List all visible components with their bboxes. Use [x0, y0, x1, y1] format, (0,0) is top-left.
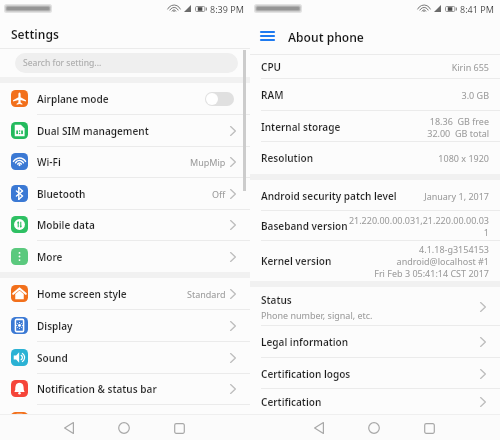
button[interactable]: More	[0, 241, 250, 273]
staticText: Search for setting...	[23, 57, 102, 69]
button[interactable]: Status	[250, 287, 500, 326]
button[interactable]: Wi-Fi	[0, 146, 250, 178]
button[interactable]: Search for setting...	[15, 53, 238, 73]
staticText: 21.220.00.00.031,21.220.00.00.03	[348, 214, 489, 226]
button[interactable]: Home	[360, 414, 388, 440]
staticText: Certification	[261, 395, 322, 409]
staticText: Display	[37, 319, 73, 333]
staticText: Resolution	[261, 151, 314, 165]
staticText: 8:39 PM	[210, 3, 244, 15]
staticText: Legal information	[261, 335, 349, 349]
button[interactable]: Back	[305, 414, 333, 440]
button[interactable]: CPU	[250, 54, 500, 79]
staticText: Baseband version	[261, 219, 348, 233]
button[interactable]: Internal storage	[250, 111, 500, 142]
staticText: Standard	[187, 288, 226, 300]
staticText: Certification logos	[261, 367, 351, 381]
button[interactable]: Mobile data	[0, 209, 250, 241]
staticText: 18.36 GB free	[429, 115, 489, 127]
staticText: Notification & status bar	[37, 382, 157, 396]
staticText: 1	[483, 226, 489, 238]
button[interactable]: Notification & status bar	[0, 373, 250, 405]
button[interactable]: Dual SIM management	[0, 115, 250, 147]
staticText: More	[37, 250, 63, 264]
staticText: Kirin 655	[451, 61, 489, 73]
staticText: 3.0 GB	[461, 89, 489, 101]
staticText: MupMip	[190, 156, 226, 168]
staticText: 8:41 PM	[460, 3, 494, 15]
staticText: Wi-Fi	[37, 155, 61, 169]
button[interactable]: Display	[0, 310, 250, 342]
button[interactable]: Baseband version	[250, 211, 500, 241]
staticText: Android security patch level	[261, 189, 397, 203]
button[interactable]: Airplane mode	[0, 83, 250, 115]
staticText: Dual SIM management	[37, 124, 149, 138]
staticText: Mobile data	[37, 218, 95, 232]
button[interactable]: Recent apps	[415, 414, 443, 440]
staticText: Kernel version	[261, 254, 332, 268]
staticText: Phone number, signal, etc.	[261, 309, 373, 321]
button[interactable]: Certification	[250, 389, 500, 415]
button[interactable]: Recent apps	[165, 414, 193, 440]
staticText: Apps	[37, 414, 62, 428]
button[interactable]: Home screen style	[0, 278, 250, 310]
staticText: January 1, 2017	[424, 190, 489, 202]
staticText: android@localhost #1	[396, 255, 489, 267]
button[interactable]: Resolution	[250, 142, 500, 174]
staticText: CPU	[261, 60, 281, 74]
button[interactable]: Android security patch level	[250, 180, 500, 211]
staticText: 1080 x 1920	[438, 152, 489, 164]
staticText: Airplane mode	[37, 92, 109, 106]
staticText: Status	[261, 293, 292, 307]
button[interactable]: Sound	[0, 342, 250, 374]
staticText: 32.00 GB total	[427, 127, 489, 139]
button[interactable]: Apps	[0, 405, 250, 437]
staticText: Settings	[11, 26, 59, 42]
staticText: RAM	[261, 88, 284, 102]
staticText: Off	[212, 188, 226, 200]
staticText: Home screen style	[37, 287, 127, 301]
button[interactable]: RAM	[250, 79, 500, 111]
button[interactable]: Certification logos	[250, 358, 500, 389]
button[interactable]: Bluetooth	[0, 178, 250, 210]
button[interactable]: Back	[55, 414, 83, 440]
staticText: Bluetooth	[37, 187, 86, 201]
button[interactable]: Home	[110, 414, 138, 440]
button[interactable]: Legal information	[250, 326, 500, 358]
button[interactable]: Kernel version	[250, 241, 500, 281]
button[interactable]: Open navigation menu	[256, 25, 278, 47]
staticText: Fri Feb 3 05:41:14 CST 2017	[374, 267, 489, 279]
staticText: 4.1.18-g3154153	[419, 243, 489, 255]
staticText: About phone	[288, 29, 364, 45]
staticText: Internal storage	[261, 120, 341, 134]
staticText: Sound	[37, 351, 68, 365]
